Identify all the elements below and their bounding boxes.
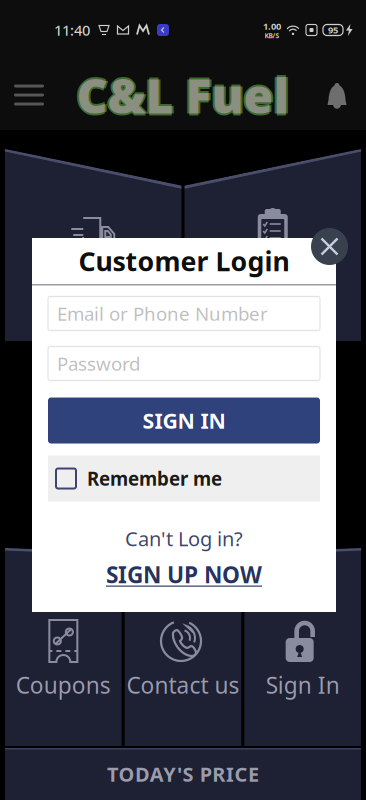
staticText: Orders	[236, 268, 310, 298]
staticText: C&L Fuel	[74, 63, 287, 127]
staticText: Email or Phone Number	[57, 301, 268, 326]
staticText: Password	[57, 351, 140, 376]
button[interactable]: TODAY'S PRICE	[5, 748, 361, 800]
staticText: 1.00	[263, 20, 281, 32]
button[interactable]: SIGN IN	[48, 397, 320, 443]
staticText: Customer Login	[78, 243, 289, 279]
button[interactable]: Menu	[3, 60, 55, 130]
staticText: Can't Log in?	[125, 525, 243, 552]
button[interactable]: Orders	[184, 149, 361, 341]
button[interactable]: Close	[311, 228, 348, 265]
staticText: Coupons	[16, 670, 111, 700]
staticText: 95	[328, 24, 338, 36]
staticText: Contact us	[126, 670, 239, 700]
button[interactable]: SIGN UP NOW	[48, 562, 320, 586]
staticText: C&L Fuel	[76, 61, 289, 125]
staticText: Remember me	[87, 466, 222, 491]
staticText: Sign In	[266, 670, 340, 700]
button[interactable]: Coupons	[5, 548, 122, 746]
button[interactable]: Contact us	[125, 548, 241, 746]
button[interactable]: Remember me	[48, 455, 320, 501]
staticText: 11:40	[54, 20, 90, 40]
button[interactable]: Sign In	[244, 548, 361, 746]
staticText: C&L Fuel	[76, 63, 289, 127]
button[interactable]: Schedule	[5, 149, 181, 341]
button[interactable]: Can't Log in?	[48, 527, 320, 549]
staticText: TODAY'S PRICE	[107, 761, 259, 787]
staticText: SIGN UP NOW	[106, 559, 262, 589]
staticText: C&L Fuel	[76, 65, 289, 129]
staticText: KB/S	[264, 31, 279, 40]
button[interactable]: Notifications	[311, 60, 363, 130]
staticText: C&L Fuel	[78, 63, 291, 127]
staticText: Schedule	[45, 269, 142, 299]
staticText: SIGN IN	[142, 406, 225, 435]
